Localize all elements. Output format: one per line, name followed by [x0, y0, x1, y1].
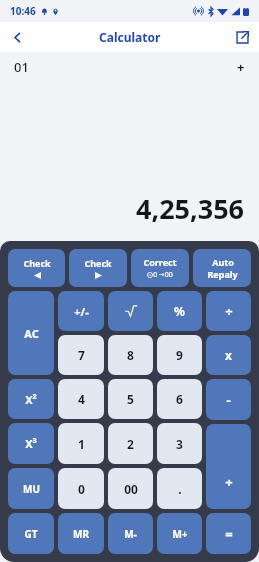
- staticText: 00: [124, 481, 138, 497]
- staticText: +: [225, 473, 233, 491]
- staticText: 4,25,356: [136, 190, 245, 227]
- staticText: 0 →00: [153, 270, 173, 280]
- button[interactable]: 7: [58, 335, 104, 375]
- staticText: 6: [176, 391, 183, 407]
- button[interactable]: 2: [108, 423, 153, 464]
- button[interactable]: Check: [8, 249, 65, 287]
- button[interactable]: MU: [8, 468, 54, 509]
- button[interactable]: 8: [108, 335, 153, 375]
- staticText: 0: [78, 481, 85, 497]
- button[interactable]: X³: [8, 423, 54, 464]
- button[interactable]: 3: [157, 423, 202, 464]
- staticText: 5: [127, 391, 134, 407]
- button[interactable]: -: [206, 379, 251, 420]
- button[interactable]: %: [157, 291, 202, 331]
- staticText: 3: [176, 436, 183, 452]
- staticText: Check: [23, 257, 51, 269]
- staticText: 7: [78, 347, 85, 363]
- staticText: Correct: [143, 256, 177, 268]
- staticText: 8: [127, 347, 134, 363]
- staticText: x: [225, 347, 232, 363]
- button[interactable]: M+: [157, 513, 202, 554]
- button[interactable]: ÷: [206, 291, 251, 331]
- button[interactable]: 9: [157, 335, 202, 375]
- button[interactable]: [108, 291, 153, 331]
- button[interactable]: 00: [108, 468, 153, 509]
- button[interactable]: 6: [157, 379, 202, 419]
- button[interactable]: 4: [58, 379, 104, 419]
- staticText: .: [178, 481, 182, 497]
- staticText: GT: [24, 527, 38, 541]
- staticText: X³: [25, 436, 37, 451]
- staticText: +: [237, 58, 245, 76]
- staticText: Auto: [212, 256, 234, 268]
- staticText: 1: [78, 436, 85, 452]
- button[interactable]: Back: [0, 22, 34, 52]
- button[interactable]: GT: [8, 513, 54, 554]
- button[interactable]: MR: [58, 513, 104, 554]
- staticText: M+: [172, 527, 188, 541]
- button[interactable]: x: [206, 335, 251, 375]
- button[interactable]: Auto: [193, 249, 251, 287]
- button[interactable]: Open in new: [225, 22, 259, 52]
- staticText: 4: [78, 391, 85, 407]
- staticText: Calculator: [99, 29, 161, 45]
- staticText: Repaly: [207, 268, 238, 280]
- button[interactable]: M-: [108, 513, 153, 554]
- staticText: X²: [25, 392, 37, 407]
- staticText: 01: [14, 58, 29, 76]
- staticText: %: [174, 303, 185, 319]
- button[interactable]: .: [157, 468, 202, 509]
- staticText: M-: [124, 527, 137, 541]
- staticText: 9: [176, 347, 183, 363]
- button[interactable]: 0: [58, 468, 104, 509]
- button[interactable]: Correct: [131, 249, 189, 287]
- button[interactable]: =: [206, 513, 251, 554]
- staticText: +/-: [74, 304, 89, 319]
- staticText: 10:46: [10, 4, 36, 18]
- button[interactable]: 1: [58, 423, 104, 464]
- button[interactable]: 5: [108, 379, 153, 419]
- staticText: 2: [127, 436, 134, 452]
- button[interactable]: X²: [8, 379, 54, 419]
- staticText: AC: [24, 326, 39, 341]
- staticText: Check: [84, 257, 112, 269]
- staticText: MU: [23, 482, 40, 496]
- button[interactable]: Check: [69, 249, 127, 287]
- staticText: =: [225, 525, 233, 543]
- button[interactable]: +: [206, 424, 251, 509]
- button[interactable]: AC: [8, 291, 54, 375]
- button[interactable]: +/-: [58, 291, 104, 331]
- staticText: -: [226, 391, 231, 409]
- staticText: ÷: [225, 302, 233, 320]
- staticText: MR: [73, 527, 89, 541]
